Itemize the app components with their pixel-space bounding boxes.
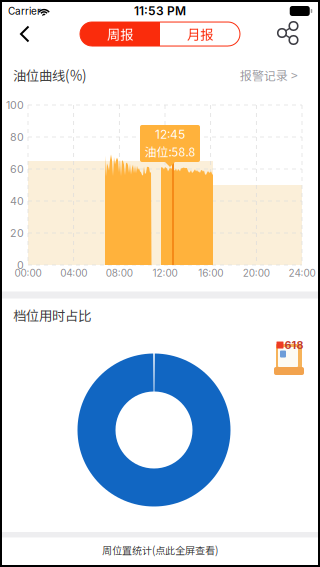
button[interactable]: Back bbox=[5, 18, 45, 50]
button[interactable]: 周报 bbox=[80, 22, 160, 46]
button[interactable]: Share bbox=[268, 17, 308, 49]
staticText: 档位用时占比 bbox=[13, 305, 91, 325]
staticText: Carrier bbox=[8, 5, 41, 17]
staticText: 20:00 bbox=[243, 267, 270, 279]
staticText: 16:00 bbox=[198, 267, 223, 279]
staticText: 11:53 PM bbox=[134, 4, 186, 18]
staticText: 12:00 bbox=[152, 267, 177, 279]
staticText: 80 bbox=[10, 130, 24, 143]
staticText: 40 bbox=[10, 194, 24, 207]
staticText: 08:00 bbox=[106, 267, 133, 279]
button[interactable]: 月报 bbox=[160, 22, 240, 46]
button[interactable]: 报警记录 > bbox=[218, 64, 298, 86]
staticText: 04:00 bbox=[60, 267, 87, 279]
staticText: 100 bbox=[6, 98, 24, 111]
button[interactable]: 618 promotion bbox=[273, 339, 305, 377]
staticText: 12:45 bbox=[155, 127, 185, 142]
staticText: 0 bbox=[17, 258, 24, 271]
staticText: 618 bbox=[284, 338, 303, 351]
button[interactable]: 周位置统计(点此全屏查看) bbox=[2, 537, 318, 562]
staticText: 月报 bbox=[187, 24, 213, 44]
staticText: 20 bbox=[10, 226, 24, 239]
staticText: 60 bbox=[10, 162, 24, 175]
staticText: 24:00 bbox=[288, 267, 315, 279]
staticText: 油位曲线(%) bbox=[13, 65, 87, 85]
staticText: 周报 bbox=[107, 24, 133, 44]
staticText: 报警记录 > bbox=[240, 66, 298, 84]
staticText: 00:00 bbox=[14, 267, 41, 279]
staticText: 周位置统计(点此全屏查看) bbox=[102, 543, 218, 557]
staticText: 油位:58.8 bbox=[144, 143, 195, 160]
